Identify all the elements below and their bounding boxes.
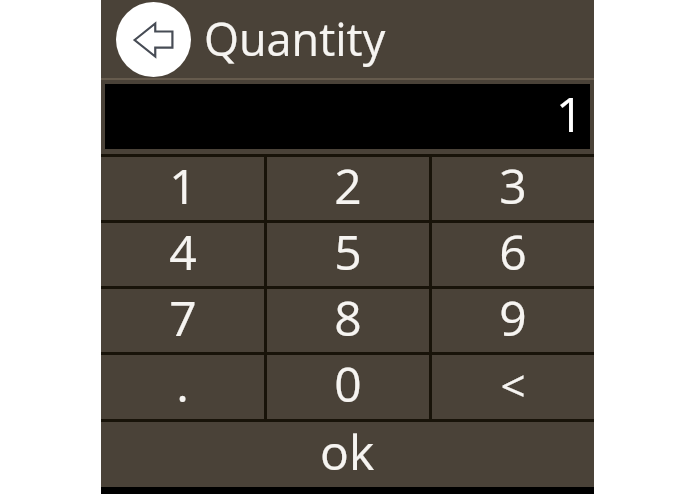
staticText: 5: [334, 219, 362, 282]
staticText: <: [500, 355, 526, 415]
staticText: 8: [334, 285, 362, 348]
staticText: 3: [499, 153, 527, 216]
staticText: 1: [556, 81, 584, 146]
button[interactable]: 5: [267, 223, 429, 286]
staticText: 2: [334, 153, 362, 216]
button[interactable]: .: [101, 355, 264, 419]
button[interactable]: ok: [101, 422, 594, 487]
button[interactable]: 3: [432, 157, 594, 220]
button[interactable]: 0: [267, 355, 429, 419]
button[interactable]: 1: [101, 157, 264, 220]
button[interactable]: <: [432, 355, 594, 419]
staticText: 1: [169, 153, 197, 216]
button[interactable]: 7: [101, 289, 264, 352]
staticText: 0: [334, 351, 362, 415]
staticText: 6: [499, 219, 527, 282]
staticText: 9: [499, 285, 527, 348]
button[interactable]: 9: [432, 289, 594, 352]
button[interactable]: 6: [432, 223, 594, 286]
staticText: .: [176, 351, 189, 415]
staticText: Quantity: [204, 8, 386, 69]
button[interactable]: 8: [267, 289, 429, 352]
staticText: ok: [320, 419, 375, 484]
button[interactable]: Back: [116, 2, 191, 77]
staticText: 4: [169, 219, 197, 282]
staticText: 7: [169, 285, 197, 348]
button[interactable]: 4: [101, 223, 264, 286]
button[interactable]: 2: [267, 157, 429, 220]
